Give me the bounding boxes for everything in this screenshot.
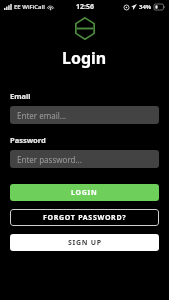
staticText: SIGN UP <box>68 238 102 248</box>
button[interactable]: FORGOT PASSWORD? <box>10 209 159 226</box>
staticText: EE WiFiCall <box>14 3 45 11</box>
staticText: Email <box>10 91 31 101</box>
staticText: FORGOT PASSWORD? <box>43 213 127 223</box>
button[interactable]: SIGN UP <box>10 234 159 251</box>
staticText: LOGIN <box>71 188 98 198</box>
staticText: Password <box>10 135 46 145</box>
staticText: 12:56 <box>76 2 94 12</box>
staticText: Login <box>62 47 107 69</box>
button[interactable]: Enter email... <box>10 106 159 124</box>
staticText: Enter email... <box>17 110 67 121</box>
staticText: Enter password... <box>17 154 82 165</box>
button[interactable]: Enter password... <box>10 150 159 168</box>
staticText: 34% <box>139 3 152 11</box>
button[interactable]: LOGIN <box>10 184 159 201</box>
